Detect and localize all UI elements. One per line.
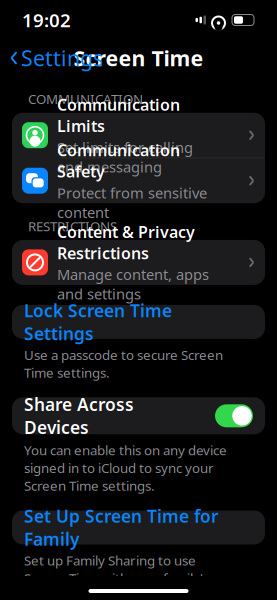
button[interactable]: Content & Privacy Restrictions	[12, 240, 265, 285]
staticText: Use a passcode to secure Screen Time set…	[24, 346, 223, 381]
button[interactable]: Settings	[0, 38, 103, 78]
staticText: COMMUNICATION	[28, 90, 143, 108]
staticText: Settings	[21, 44, 103, 72]
staticText: Protect from sensitive content	[57, 183, 207, 222]
staticText: Content & Privacy Restrictions	[57, 221, 195, 264]
staticText: Screen Time	[73, 44, 203, 72]
staticText: Set Up Screen Time for Family	[24, 504, 219, 550]
staticText: Set limits for calling and messaging	[57, 137, 193, 176]
button[interactable]: Share Across Devices	[12, 397, 265, 434]
button[interactable]: Communication Limits	[12, 113, 265, 158]
button[interactable]: Set Up Screen Time for Family	[12, 510, 265, 544]
staticText: Communication Safety	[57, 139, 180, 182]
button[interactable]: Lock Screen Time Settings	[12, 305, 265, 339]
staticText: You can enable this on any device signed…	[24, 441, 227, 494]
button[interactable]: Communication Safety	[12, 158, 265, 203]
staticText: Share Across Devices	[24, 393, 134, 439]
staticText: Lock Screen Time Settings	[24, 299, 172, 345]
staticText: Communication Limits	[57, 94, 180, 136]
staticText: RESTRICTIONS	[28, 217, 117, 235]
staticText: Manage content, apps and settings	[57, 265, 209, 304]
staticText: 19:02	[22, 8, 71, 32]
staticText: Set up Family Sharing to use Screen Time…	[24, 551, 209, 600]
